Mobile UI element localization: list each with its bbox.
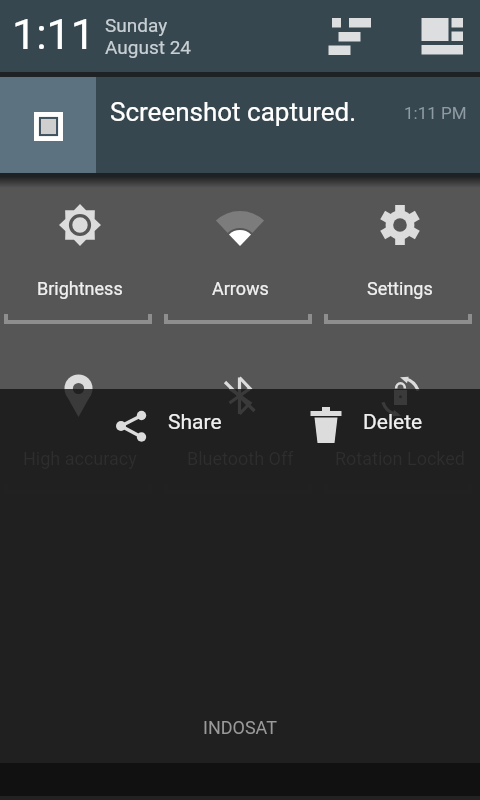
button[interactable]: Settings xyxy=(320,177,480,347)
staticText: High accuracy xyxy=(23,448,137,469)
button[interactable]: High accuracy xyxy=(0,347,160,389)
button[interactable]: Arrows xyxy=(160,177,320,347)
staticText: 1:11 PM xyxy=(404,103,467,123)
staticText: Delete xyxy=(363,410,423,435)
button[interactable]: Network signal xyxy=(323,10,377,62)
staticText: Settings xyxy=(367,278,433,299)
button[interactable]: Battery status xyxy=(414,10,468,62)
staticText: Bluetooth Off xyxy=(187,448,294,469)
staticText: INDOSAT xyxy=(203,717,277,738)
staticText: Share xyxy=(168,410,222,435)
button[interactable]: Share xyxy=(105,394,238,450)
button[interactable]: Brightness xyxy=(0,177,160,347)
staticText: Rotation Locked xyxy=(335,448,465,469)
staticText: 1:11 xyxy=(12,9,95,59)
staticText: Arrows xyxy=(212,278,269,299)
button[interactable]: Rotation Locked xyxy=(320,347,480,389)
button[interactable]: Bluetooth Off xyxy=(160,389,320,517)
button[interactable]: Bluetooth Off xyxy=(160,347,320,389)
staticText: Screenshot captured. xyxy=(110,97,357,127)
staticText: August 24 xyxy=(105,36,192,58)
button[interactable]: Screenshot captured. xyxy=(96,77,480,173)
button[interactable]: Rotation Locked xyxy=(320,389,480,517)
staticText: Brightness xyxy=(37,278,123,299)
staticText: Sunday xyxy=(105,14,168,36)
button[interactable]: Screenshot thumbnail xyxy=(0,77,96,173)
button[interactable]: Delete xyxy=(304,394,439,450)
button[interactable]: High accuracy xyxy=(0,389,160,517)
